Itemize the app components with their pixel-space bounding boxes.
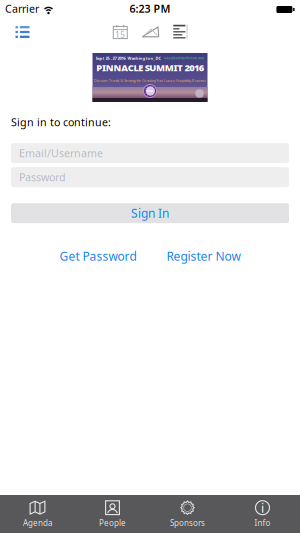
staticText: Carrier [5,1,39,16]
button[interactable]: Calendar [113,25,128,39]
button[interactable]: Pinnacle Summit 2016 [92,53,207,102]
staticText: 6:23 PM [129,1,170,16]
staticText: luxuryhotelconference.com [163,56,204,60]
staticText: Sign in to continue: [11,115,111,129]
button[interactable]: Register Now [166,248,240,264]
staticText: Sept 25 - 27 2016 Washington, DC [95,55,161,61]
button[interactable]: Get Password [59,248,136,264]
button[interactable]: Sponsors [150,495,225,533]
button[interactable]: Notes [173,25,187,39]
staticText: Password [19,170,66,184]
button[interactable]: People [75,495,150,533]
staticText: People [99,518,126,528]
staticText: Get Password [59,248,136,264]
button[interactable]: Menu [0,26,30,38]
button[interactable]: i [225,495,300,533]
staticText: Info [254,518,270,528]
button[interactable]: Messages [142,26,159,38]
staticText: PINNACLE SUMMIT 2016 [96,61,204,74]
staticText: Sponsors [170,518,205,528]
staticText: Agenda [23,518,52,528]
staticText: Discover Trends & Strategy for Growing Y… [94,78,206,83]
staticText: ILHA [147,89,153,93]
staticText: Register Now [166,248,240,264]
staticText: Email/Username [19,146,103,160]
button[interactable]: Email/Username [11,143,289,163]
staticText: Sign In [131,205,169,221]
button[interactable]: Password [11,167,289,187]
staticText: i [261,500,264,516]
button[interactable]: Sign In [11,203,289,223]
button[interactable]: Agenda [0,495,75,533]
staticText: 15 [115,29,125,40]
